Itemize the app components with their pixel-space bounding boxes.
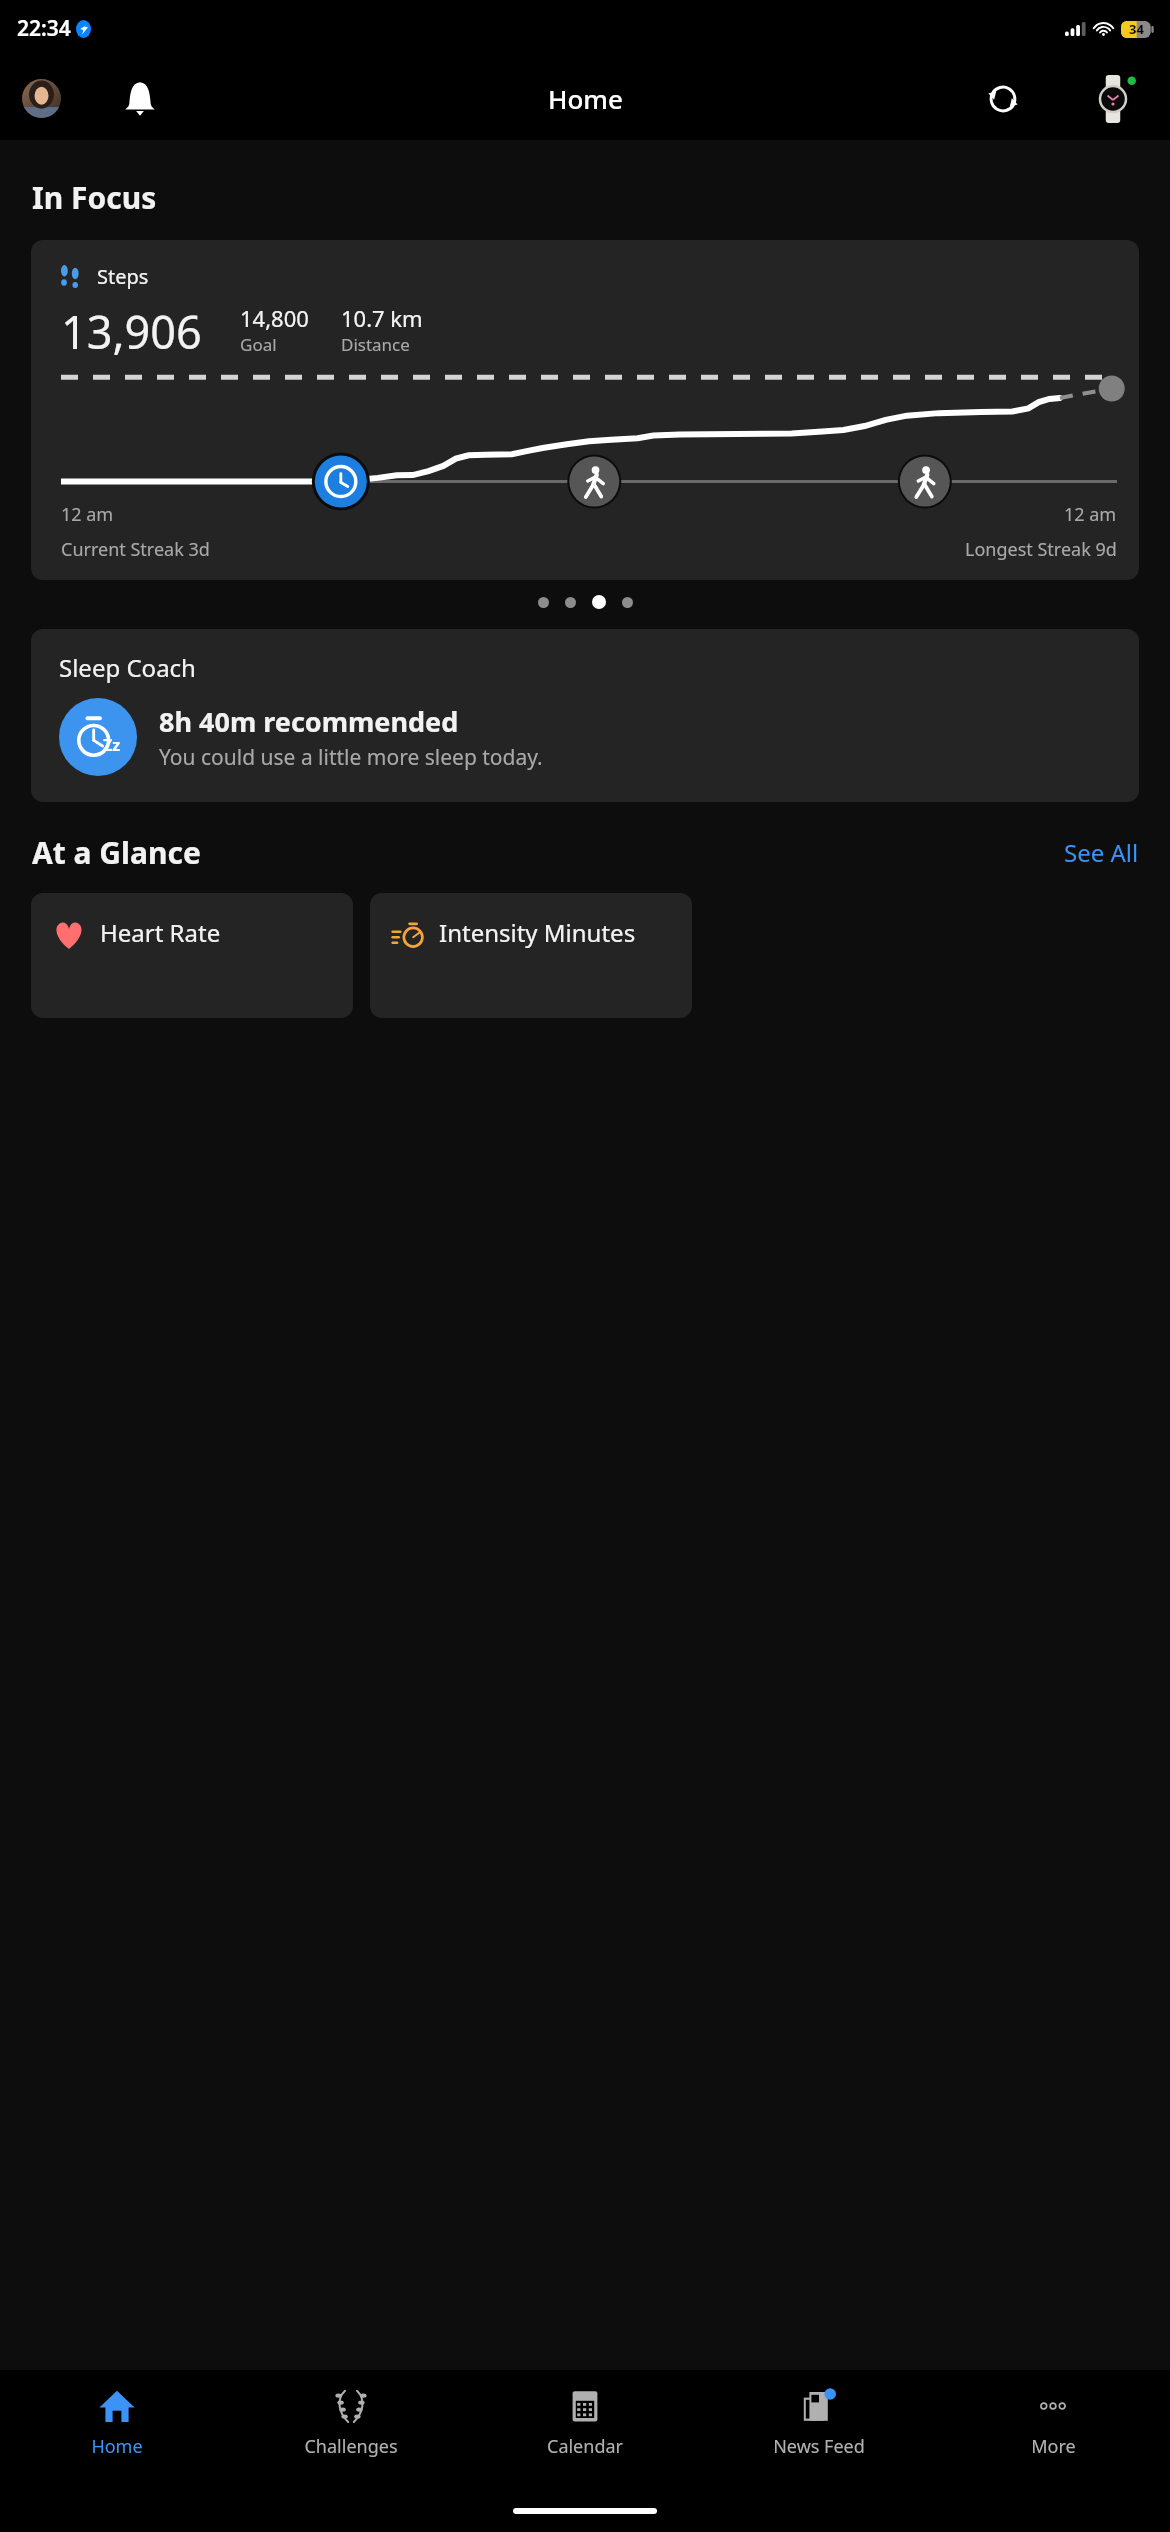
staticText: Home xyxy=(91,2434,143,2459)
staticText: At a Glance xyxy=(32,832,201,873)
staticText: More xyxy=(1031,2434,1076,2459)
staticText: News Feed xyxy=(773,2434,865,2459)
staticText: 12 am xyxy=(1064,502,1117,527)
button[interactable]: Home xyxy=(0,2370,234,2498)
staticText: You could use a little more sleep today. xyxy=(159,743,543,772)
staticText: In Focus xyxy=(32,177,157,218)
staticText: 12 am xyxy=(61,502,114,527)
staticText: Calendar xyxy=(547,2434,623,2459)
button[interactable]: More xyxy=(936,2370,1170,2498)
staticText: 34 xyxy=(1129,20,1144,38)
button[interactable]: Sync xyxy=(976,72,1030,126)
staticText: 14,800 xyxy=(240,303,309,333)
button[interactable]: See All xyxy=(1060,830,1143,875)
staticText: Steps xyxy=(97,263,149,290)
staticText: Sleep Coach xyxy=(59,651,196,684)
button[interactable]: Device xyxy=(1084,70,1142,128)
staticText: Heart Rate xyxy=(100,916,221,949)
button[interactable]: Profile xyxy=(22,79,61,118)
staticText: 10.7 km xyxy=(341,303,423,333)
staticText: Zz xyxy=(103,734,121,756)
staticText: Intensity Minutes xyxy=(439,916,636,949)
staticText: 13,906 xyxy=(61,301,202,362)
button[interactable]: News Feed xyxy=(702,2370,936,2498)
button[interactable]: Steps xyxy=(31,240,1139,580)
button[interactable]: Challenges xyxy=(234,2370,468,2498)
staticText: See All xyxy=(1064,836,1139,869)
staticText: Current Streak 3d xyxy=(61,537,210,562)
button[interactable]: Notifications xyxy=(113,72,167,126)
staticText: Longest Streak 9d xyxy=(965,537,1117,562)
button[interactable]: Calendar xyxy=(468,2370,702,2498)
button[interactable]: Heart Rate xyxy=(31,893,353,1018)
staticText: Goal xyxy=(240,333,277,356)
staticText: Home xyxy=(548,81,623,116)
button[interactable]: Sleep Coach xyxy=(31,629,1139,802)
staticText: 22:34 xyxy=(17,14,71,43)
button[interactable]: Intensity Minutes xyxy=(370,893,692,1018)
staticText: 8h 40m recommended xyxy=(159,703,459,740)
staticText: Distance xyxy=(341,333,410,356)
staticText: Challenges xyxy=(304,2434,398,2459)
